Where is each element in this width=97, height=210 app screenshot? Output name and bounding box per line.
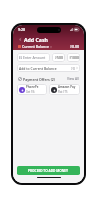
button[interactable]: Add to Current Balance [17,64,80,72]
staticText: Amazon Pay Bonus [58,85,78,89]
button[interactable]: Amazon Pay Bonus [49,84,80,95]
button[interactable]: PhonePe upto ₹% [17,84,47,95]
staticText: ₹0.00 [70,44,79,49]
staticText: ₹0 [71,66,75,70]
staticText: ₹1000 [69,55,79,60]
staticText: 9:28 [18,27,26,32]
button[interactable]: View All [67,77,79,81]
staticText: Flat ₹75 Cashback [58,90,78,94]
staticText: View All [67,77,79,81]
button[interactable]: ₹500 [52,53,65,62]
staticText: Current Balance [22,44,49,49]
button[interactable]: ₹1000 [67,53,80,62]
button[interactable]: Back [17,36,23,42]
staticText: Add to Current Balance [19,66,57,71]
staticText: Add Cash [24,36,48,43]
button[interactable]: ₹ [17,53,50,62]
staticText: Enter Amount [23,55,46,60]
button[interactable]: PROCEED TO ADD MONEY [17,166,80,175]
staticText: ₹ [20,56,22,59]
staticText: PhonePe upto ₹% [26,85,45,89]
staticText: ₹500 [55,55,63,60]
staticText: Get 5% Cashback [26,90,45,94]
staticText: Payment Offers (2) [23,77,55,82]
staticText: PROCEED TO ADD MONEY [28,169,69,173]
